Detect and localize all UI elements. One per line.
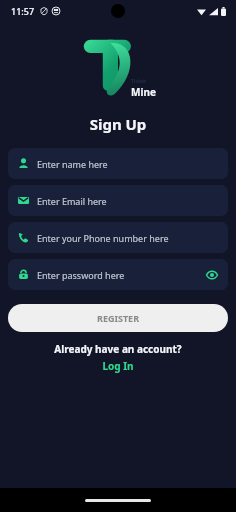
staticText: Log In [102,359,134,373]
staticText: Already have an account? [0,342,236,356]
button[interactable]: Enter Email here [8,185,228,216]
staticText: Enter name here [37,158,108,170]
staticText: Enter Email here [37,195,107,207]
button[interactable]: Show password [204,267,220,283]
button[interactable]: REGISTER [8,304,228,332]
button[interactable]: Enter password here [8,259,228,290]
button[interactable]: Enter your Phone number here [8,222,228,253]
staticText: Enter your Phone number here [37,232,169,244]
button[interactable]: Enter name here [8,148,228,179]
staticText: Mine [131,85,156,99]
staticText: Ticket [131,78,147,85]
staticText: Sign Up [0,114,236,134]
staticText: REGISTER [97,312,140,324]
staticText: 11:57 [11,5,35,17]
staticText: Enter password here [37,269,125,281]
button[interactable]: Log In [0,359,236,373]
